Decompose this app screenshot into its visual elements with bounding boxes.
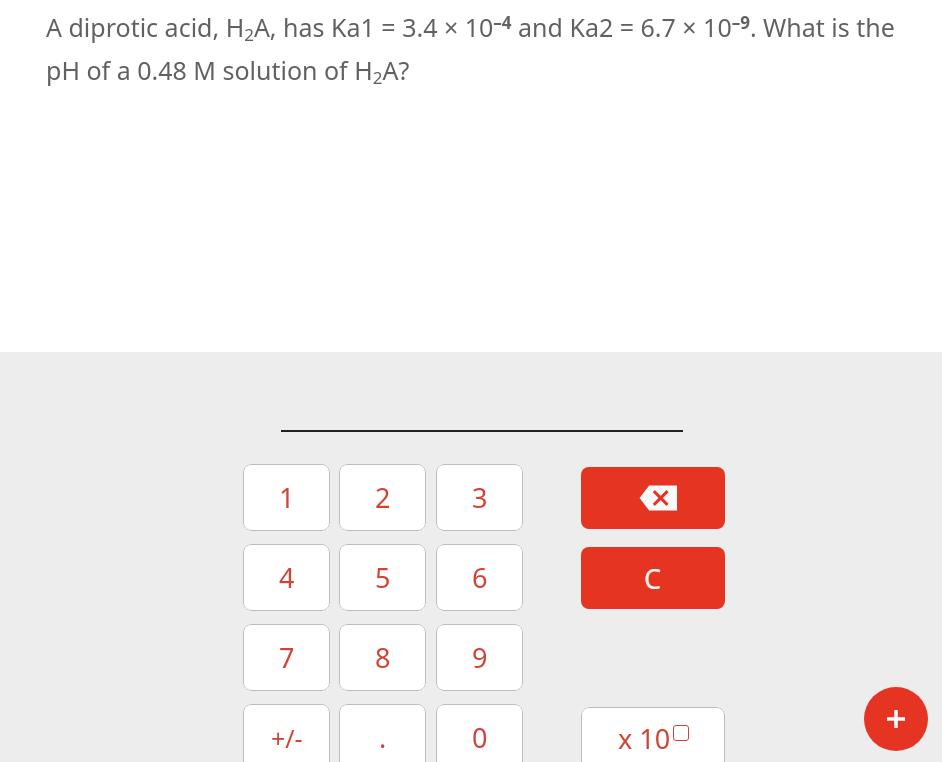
button[interactable]: 6	[436, 544, 523, 611]
staticText: .	[379, 719, 387, 756]
button[interactable]: 9	[436, 624, 523, 691]
staticText: C	[644, 560, 662, 597]
staticText: 7	[279, 639, 295, 676]
button[interactable]: 1	[243, 464, 330, 531]
button[interactable]: .	[339, 704, 426, 762]
button[interactable]: 3	[436, 464, 523, 531]
button[interactable]: 7	[243, 624, 330, 691]
staticText: 8	[375, 639, 391, 676]
button[interactable]: Backspace	[581, 467, 725, 529]
staticText: 1	[279, 479, 295, 516]
staticText: x 10	[618, 720, 671, 757]
staticText: 2	[375, 479, 391, 516]
button[interactable]: 8	[339, 624, 426, 691]
staticText: 5	[375, 559, 391, 596]
button[interactable]: C	[581, 547, 725, 609]
staticText: 9	[472, 639, 488, 676]
staticText: 0	[472, 719, 488, 756]
button[interactable]: +/-	[243, 704, 330, 762]
button[interactable]: 0	[436, 704, 523, 762]
staticText: 4	[279, 559, 295, 596]
staticText: +/-	[271, 721, 303, 755]
button[interactable]: x 10	[581, 707, 725, 762]
staticText: 3	[472, 479, 488, 516]
button[interactable]: 5	[339, 544, 426, 611]
button[interactable]: 4	[243, 544, 330, 611]
staticText: 6	[472, 559, 488, 596]
button[interactable]: Add	[864, 687, 928, 751]
button[interactable]: 2	[339, 464, 426, 531]
staticText: A diprotic acid, H2A, has Ka1 = 3.4 × 10…	[46, 10, 924, 89]
